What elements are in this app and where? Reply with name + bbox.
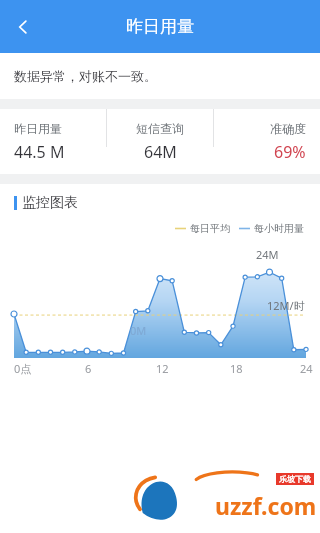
staticText: 乐坡下载 (279, 474, 311, 484)
staticText: 69% (274, 141, 306, 163)
button[interactable]: 准确度 (214, 109, 320, 174)
staticText: 12M/时 (267, 298, 305, 313)
staticText: 18 (230, 361, 243, 376)
staticText: 0M (130, 323, 147, 338)
staticText: 0点 (14, 361, 32, 376)
button[interactable]: 数据异常，对账不一致。 (0, 53, 320, 99)
button[interactable]: Back (0, 4, 46, 50)
staticText: 24M (256, 247, 279, 262)
staticText: 每日平均 (190, 222, 230, 235)
staticText: 6 (85, 361, 92, 376)
staticText: 昨日用量 (14, 121, 62, 136)
staticText: 数据异常，对账不一致。 (14, 68, 157, 84)
staticText: 监控图表 (22, 194, 78, 212)
staticText: 准确度 (270, 121, 306, 136)
button[interactable]: 短信查询 (107, 109, 213, 174)
staticText: uzzf.com (215, 490, 317, 521)
staticText: 12 (156, 361, 169, 376)
staticText: 64M (144, 141, 177, 163)
staticText: 昨日用量 (126, 16, 194, 37)
staticText: 24 (300, 361, 313, 376)
staticText: 44.5 M (14, 141, 65, 163)
button[interactable]: 昨日用量 (0, 109, 106, 174)
staticText: 每小时用量 (254, 222, 304, 235)
staticText: 短信查询 (136, 121, 184, 136)
